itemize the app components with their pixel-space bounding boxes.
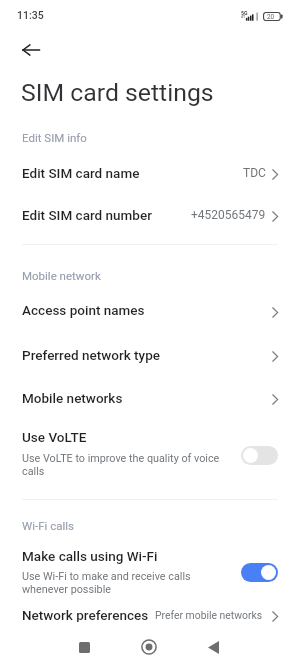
button[interactable] xyxy=(0,604,300,644)
button[interactable] xyxy=(0,335,300,379)
staticText: Preferred network type xyxy=(22,347,161,363)
button[interactable]: Recent apps xyxy=(62,625,106,667)
staticText: 4T xyxy=(241,15,246,19)
staticText: Mobile networks xyxy=(22,390,123,406)
staticText: Edit SIM card name xyxy=(22,165,140,181)
staticText: Edit SIM info xyxy=(22,131,87,144)
staticText: Wi-Fi calls xyxy=(22,519,74,532)
staticText: Mobile network xyxy=(22,269,101,282)
staticText: 5G xyxy=(241,10,248,16)
staticText: +4520565479 xyxy=(191,208,266,222)
button[interactable] xyxy=(0,423,300,481)
staticText: Access point names xyxy=(22,302,145,318)
staticText: TDC xyxy=(243,166,266,180)
button[interactable] xyxy=(0,154,300,196)
button[interactable]: Back xyxy=(191,625,235,667)
staticText: SIM card settings xyxy=(21,78,214,107)
button[interactable]: Back xyxy=(9,28,53,72)
staticText: Use VoLTE xyxy=(22,429,87,445)
button[interactable] xyxy=(0,291,300,335)
staticText: Network preferences xyxy=(22,607,149,623)
staticText: 11:35 xyxy=(17,9,44,21)
button[interactable] xyxy=(0,196,300,238)
button[interactable] xyxy=(0,542,300,600)
staticText: Use VoLTE to improve the quality of voic… xyxy=(22,452,236,478)
button[interactable] xyxy=(0,379,300,423)
staticText: Prefer mobile networks xyxy=(155,609,263,621)
staticText: Use Wi-Fi to make and receive calls when… xyxy=(22,570,236,596)
staticText: Make calls using Wi-Fi xyxy=(22,548,158,564)
staticText: 20 xyxy=(267,13,275,21)
staticText: Edit SIM card number xyxy=(22,207,152,223)
button[interactable]: Home xyxy=(127,625,171,667)
